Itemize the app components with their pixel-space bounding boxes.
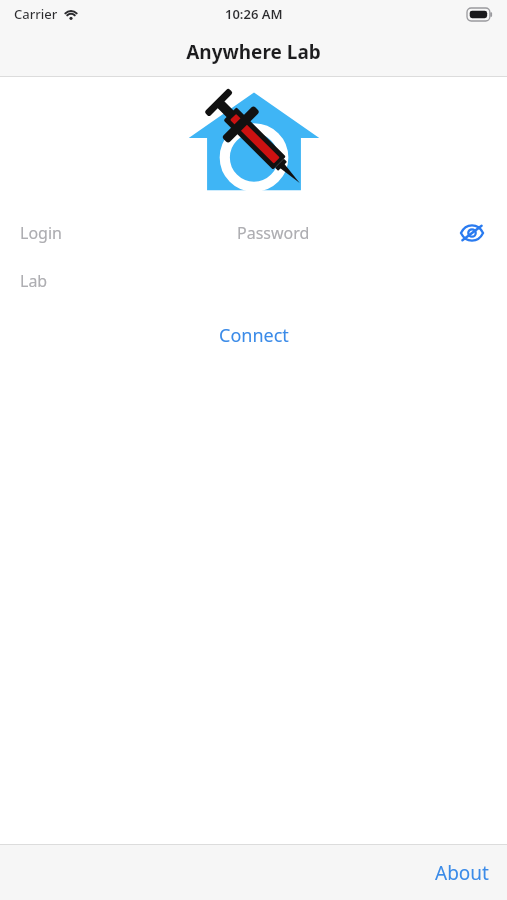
staticText: About [435,860,489,886]
staticText: Lab [20,270,48,292]
staticText: Anywhere Lab [186,39,321,65]
button[interactable]: Show password [450,211,494,255]
staticText: Carrier [14,5,58,23]
staticText: Connect [219,323,289,348]
button[interactable]: Password [225,209,450,257]
button[interactable]: Connect [201,317,307,354]
button[interactable]: Login [0,209,225,257]
staticText: Password [237,222,310,244]
staticText: 10:26 AM [225,5,283,23]
button[interactable]: Lab [0,257,507,305]
button[interactable]: About [417,852,507,894]
staticText: Login [20,222,62,244]
